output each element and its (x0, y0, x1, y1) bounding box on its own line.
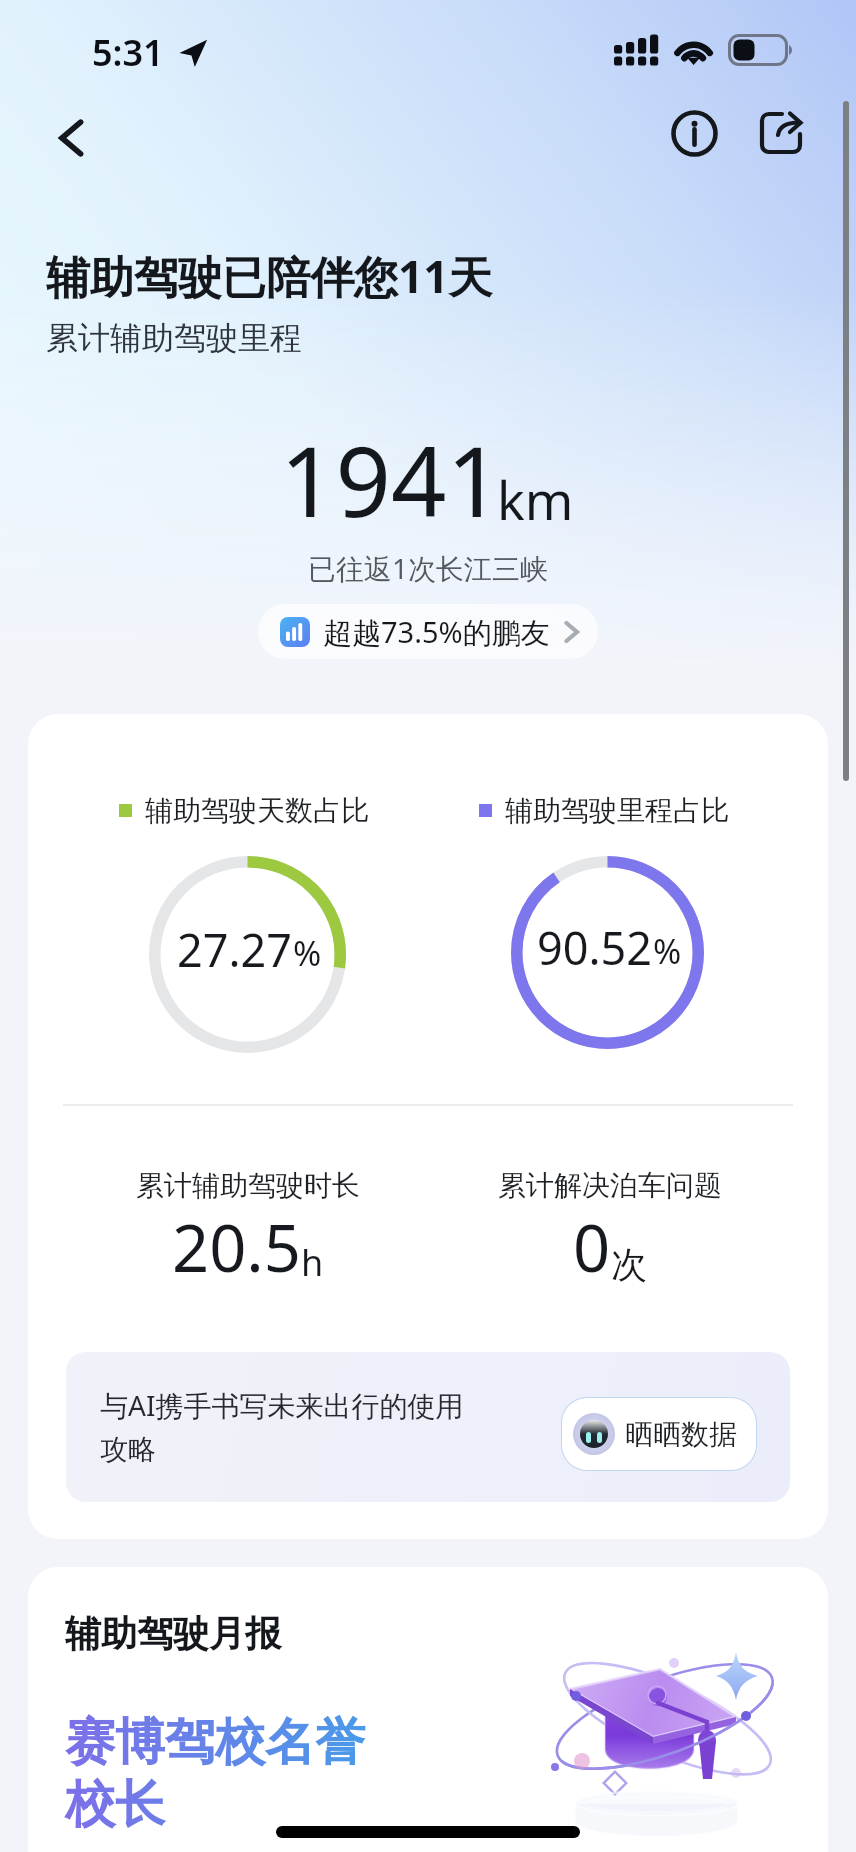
staticText: 晒晒数据 (625, 1417, 737, 1452)
button[interactable]: Back (38, 104, 106, 172)
button[interactable]: Info (660, 99, 728, 167)
staticText: 20.5 (172, 1203, 301, 1292)
staticText: 27.27 (177, 919, 293, 980)
staticText: 辅助驾驶已陪伴您11天 (46, 246, 493, 306)
button[interactable]: 晒晒数据 (562, 1398, 756, 1470)
staticText: 辅助驾驶里程占比 (505, 793, 729, 828)
staticText: 0 (573, 1203, 611, 1292)
staticText: 已往返1次长江三峡 (0, 549, 856, 587)
staticText: 超越73.5%的鹏友 (323, 612, 550, 652)
staticText: h (301, 1238, 324, 1287)
button[interactable]: 超越73.5%的鹏友 (258, 604, 598, 659)
staticText: 1941 (280, 413, 502, 545)
staticText: 赛博驾校名誉 校长 (65, 1711, 365, 1836)
staticText: 5:31 (92, 28, 164, 77)
staticText: 辅助驾驶天数占比 (145, 793, 369, 828)
staticText: 与AI携手书写未来出行的使用 攻略 (100, 1386, 500, 1467)
staticText: 累计解决泊车问题 (498, 1168, 722, 1203)
staticText: 辅助驾驶月报 (65, 1611, 281, 1656)
button[interactable]: Share (747, 99, 815, 167)
staticText: 90.52 (537, 917, 653, 978)
staticText: % (293, 930, 322, 976)
staticText: 次 (611, 1242, 647, 1287)
button[interactable]: 辅助驾驶月报 (28, 1567, 828, 1852)
staticText: 累计辅助驾驶时长 (136, 1168, 360, 1203)
staticText: 累计辅助驾驶里程 (46, 318, 302, 358)
staticText: % (653, 928, 682, 974)
staticText: km (497, 464, 574, 535)
